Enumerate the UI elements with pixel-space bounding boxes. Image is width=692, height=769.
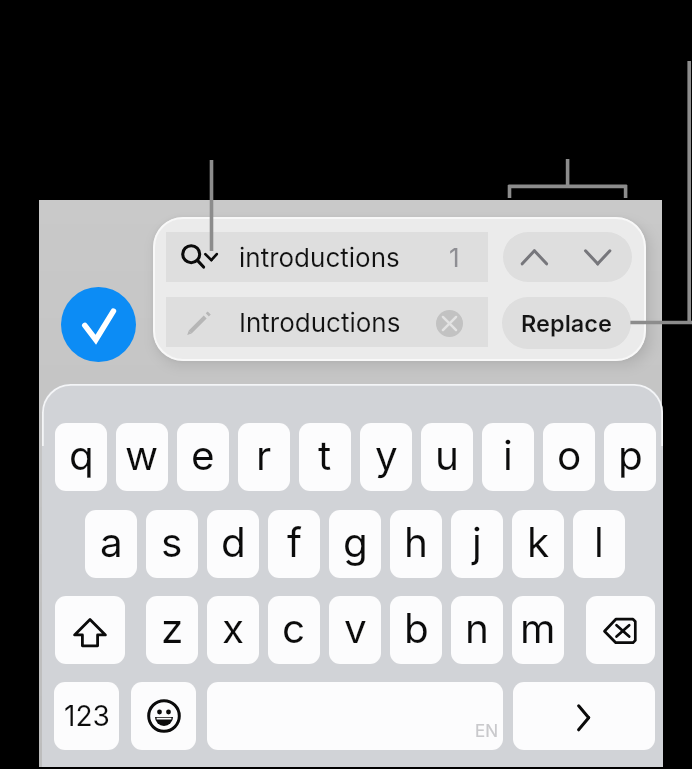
staticText: t [318,431,332,480]
staticText: q [69,431,94,480]
staticText: g [343,518,368,567]
button[interactable]: x [207,596,259,664]
button[interactable]: y [360,423,412,491]
staticText: Replace [521,309,612,337]
button[interactable]: p [604,423,656,491]
staticText: n [465,604,489,653]
button[interactable]: v [329,596,381,664]
button[interactable]: h [390,510,442,578]
button[interactable]: Numbers and symbols [54,682,119,750]
button[interactable]: Space [207,682,503,750]
button[interactable]: Next result [567,232,631,282]
staticText: e [191,431,215,480]
staticText: b [404,604,429,653]
button[interactable]: w [116,423,168,491]
staticText: a [100,518,123,567]
staticText: v [344,604,367,653]
button[interactable]: s [146,510,198,578]
button[interactable]: z [146,596,198,664]
staticText: i [503,431,513,480]
button[interactable]: a [85,510,137,578]
staticText: r [256,431,272,480]
button[interactable]: Clear text [436,310,463,337]
button[interactable]: c [268,596,320,664]
button[interactable]: Return [513,682,655,750]
staticText: 123 [64,699,110,733]
button[interactable]: d [207,510,259,578]
staticText: d [221,518,246,567]
staticText: k [527,518,550,567]
button[interactable]: r [238,423,290,491]
staticText: EN [475,721,499,742]
staticText: h [404,518,428,567]
staticText: y [375,431,398,480]
button[interactable]: Previous result [503,232,567,282]
staticText: Introductions [239,307,401,338]
staticText: c [282,604,306,653]
button[interactable]: k [512,510,564,578]
staticText: m [520,604,556,653]
staticText: l [594,518,604,567]
button[interactable]: e [177,423,229,491]
button[interactable]: j [451,510,503,578]
button[interactable]: b [390,596,442,664]
button[interactable]: o [543,423,595,491]
button[interactable]: Shift [55,596,125,664]
button[interactable]: Done [61,287,136,362]
button[interactable]: l [573,510,625,578]
staticText: s [161,518,183,567]
staticText: w [125,431,159,480]
button[interactable]: i [482,423,534,491]
staticText: j [472,518,482,567]
staticText: f [287,518,302,567]
button[interactable]: u [421,423,473,491]
staticText: z [161,604,184,653]
staticText: o [557,431,582,480]
button[interactable]: Introductions [166,297,488,347]
button[interactable]: t [299,423,351,491]
staticText: x [222,604,245,653]
staticText: p [618,431,643,480]
staticText: introductions [239,242,400,273]
button[interactable]: q [55,423,107,491]
button[interactable]: Emoji [131,682,196,750]
button[interactable]: introductions [166,232,488,282]
button[interactable]: f [268,510,320,578]
button[interactable]: g [329,510,381,578]
button[interactable]: m [512,596,564,664]
button[interactable]: Backspace [586,596,655,664]
button[interactable]: Replace [502,297,631,349]
button[interactable]: n [451,596,503,664]
staticText: u [435,431,459,480]
staticText: 1 [449,242,460,273]
